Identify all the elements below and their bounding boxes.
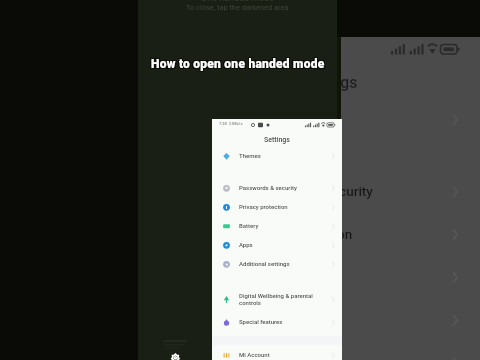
staticText: Settings <box>341 74 357 92</box>
staticText: One handed mode <box>201 0 275 4</box>
staticText: Apps <box>239 241 253 248</box>
staticText: How to open one handed mode <box>150 58 324 72</box>
staticText: Digital Wellbeing & parental <box>239 292 313 299</box>
staticText: How to open one handed mode <box>150 58 324 72</box>
staticText: How to open one handed mode <box>152 58 326 72</box>
staticText: How to open one handed mode <box>150 56 324 70</box>
staticText: How to open one handed mode <box>150 58 324 72</box>
staticText: Additional settings <box>239 260 290 267</box>
staticText: How to open one handed mode <box>150 56 324 70</box>
staticText: To close, tap the darkened area <box>186 3 289 12</box>
staticText: How to open one handed mode <box>150 56 324 70</box>
staticText: How to open one handed mode <box>151 58 325 72</box>
button[interactable]: Settings <box>167 350 184 360</box>
staticText: How to open one handed mode <box>150 56 324 70</box>
staticText: How to open one handed mode <box>152 56 326 70</box>
staticText: Settings <box>264 136 290 144</box>
staticText: Privacy protection <box>341 225 353 241</box>
staticText: Battery <box>239 222 259 229</box>
staticText: Privacy protection <box>239 203 288 210</box>
staticText: How to open one handed mode <box>151 58 325 72</box>
staticText: Passwords & security <box>239 184 297 191</box>
staticText: How to open one handed mode <box>150 57 324 71</box>
staticText: Passwords & security <box>341 182 373 198</box>
staticText: 7:28 3.08b/s <box>219 121 243 126</box>
staticText: How to open one handed mode <box>150 57 324 71</box>
staticText: How to open one handed mode <box>151 56 325 70</box>
staticText: How to open one handed mode <box>152 58 326 72</box>
staticText: How to open one handed mode <box>152 57 326 71</box>
staticText: How to open one handed mode <box>150 58 324 72</box>
staticText: How to open one handed mode <box>152 58 326 72</box>
staticText: Mi Account <box>239 351 270 358</box>
staticText: controls <box>239 299 261 306</box>
staticText: Themes <box>239 152 261 159</box>
staticText: How to open one handed mode <box>152 56 326 70</box>
staticText: Additional settings <box>341 353 357 360</box>
staticText: How to open one handed mode <box>152 58 326 72</box>
staticText: Special features <box>239 318 283 325</box>
staticText: How to open one handed mode <box>151 57 325 71</box>
staticText: How to open one handed mode <box>152 57 326 71</box>
staticText: How to open one handed mode <box>151 56 325 70</box>
staticText: How to open one handed mode <box>152 56 326 70</box>
staticText: How to open one handed mode <box>152 56 326 70</box>
